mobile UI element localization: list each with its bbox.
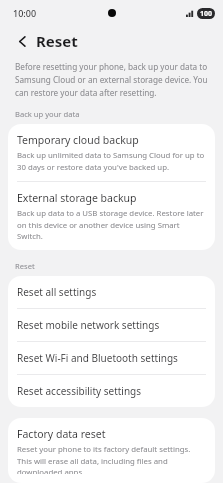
button[interactable]: Temporary cloud backup bbox=[8, 124, 215, 181]
staticText: Back up unlimited data to Samsung Cloud … bbox=[17, 150, 206, 172]
button[interactable]: Reset Wi-Fi and Bluetooth settings bbox=[8, 342, 215, 374]
staticText: Temporary cloud backup bbox=[17, 133, 139, 147]
button[interactable]: External storage backup bbox=[8, 182, 215, 250]
button[interactable]: Reset accessibility settings bbox=[8, 375, 215, 407]
staticText: Reset bbox=[15, 261, 223, 271]
staticText: Factory data reset bbox=[17, 427, 106, 441]
staticText: Back up your data bbox=[15, 109, 223, 119]
staticText: 10:00 bbox=[13, 7, 37, 19]
staticText: Reset bbox=[36, 31, 78, 51]
button[interactable]: Factory data reset bbox=[8, 418, 215, 483]
staticText: Reset Wi-Fi and Bluetooth settings bbox=[17, 351, 178, 365]
staticText: Reset accessibility settings bbox=[17, 384, 142, 398]
staticText: Before resetting your phone, back up you… bbox=[15, 61, 211, 99]
staticText: Reset all settings bbox=[17, 285, 97, 299]
staticText: Back up data to a USB storage device. Re… bbox=[17, 208, 206, 241]
button[interactable]: Back bbox=[12, 31, 32, 51]
staticText: External storage backup bbox=[17, 191, 137, 205]
staticText: Reset your phone to its factory default … bbox=[17, 444, 206, 474]
staticText: Reset mobile network settings bbox=[17, 318, 160, 332]
button[interactable]: Reset mobile network settings bbox=[8, 309, 215, 341]
staticText: 100 bbox=[200, 9, 213, 19]
button[interactable]: Reset all settings bbox=[8, 276, 215, 308]
